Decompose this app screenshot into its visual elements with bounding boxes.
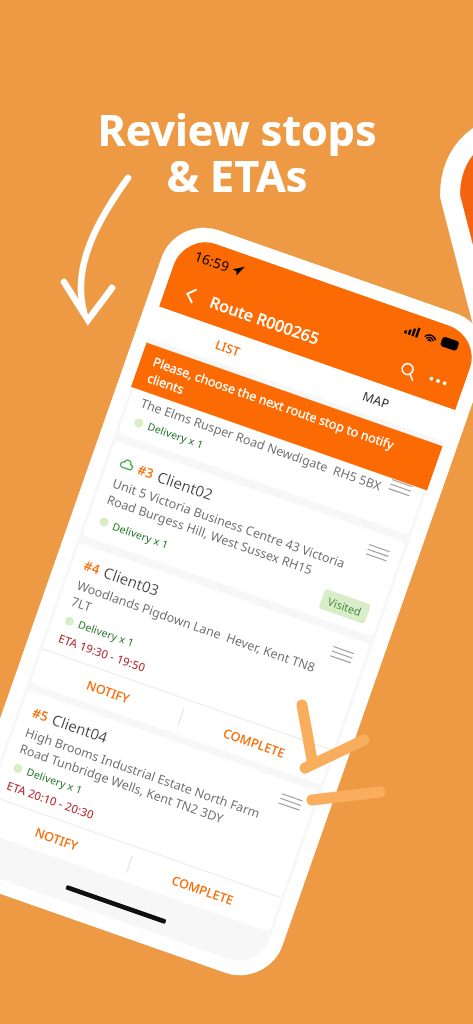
staticText: COMPLETE (221, 724, 288, 762)
staticText: The Elms Rusper Road Newdigate RH5 5BX (138, 395, 384, 495)
button[interactable]: #2 (118, 345, 439, 535)
button[interactable]: #5 (0, 690, 319, 932)
staticText: Client03 (101, 562, 162, 600)
staticText: Client02 (155, 466, 216, 504)
button[interactable]: NOTIFY (30, 649, 186, 734)
button[interactable]: #4 (30, 543, 370, 785)
staticText: Review stops & ETAs (97, 100, 377, 205)
button[interactable]: Search (390, 353, 426, 388)
button[interactable]: COMPLETE (124, 847, 281, 932)
staticText: Delivery x 1 (146, 419, 206, 452)
staticText: #5 (30, 703, 51, 725)
button[interactable]: NOTIFY (0, 796, 135, 881)
button[interactable]: LIST (148, 307, 307, 390)
staticText: Visited (326, 593, 364, 619)
staticText: Client01 (170, 366, 231, 404)
staticText: COMPLETE (169, 872, 236, 909)
staticText: 16:59 (192, 246, 232, 276)
staticText: #3 (135, 460, 156, 483)
button[interactable]: Reorder (275, 787, 306, 817)
staticText: Woodlands Pigdown Lane Hever, Kent TN8 7… (69, 577, 327, 694)
button[interactable]: Reorder (385, 473, 417, 502)
staticText: LIST (213, 336, 243, 360)
button[interactable]: COMPLETE (176, 700, 333, 785)
button[interactable]: Please, choose the next route stop to no… (131, 342, 443, 490)
staticText: #4 (81, 556, 103, 578)
button[interactable]: Reorder (326, 640, 358, 669)
staticText: MAP (360, 387, 392, 413)
button[interactable]: MAP (296, 358, 455, 441)
staticText: NOTIFY (33, 824, 81, 855)
staticText: Delivery x 1 (25, 764, 85, 797)
staticText: Delivery x 1 (76, 617, 136, 650)
staticText: Unit 5 Victoria Business Centre 43 Victo… (105, 475, 363, 592)
staticText: ETA 20:10 - 20:30 (4, 778, 97, 823)
staticText: #2 (150, 360, 171, 382)
button[interactable]: More options (420, 363, 456, 399)
button[interactable]: Back (173, 277, 209, 312)
staticText: Route R000265 (207, 291, 323, 350)
staticText: High Brooms Industrial Estate North Farm… (18, 724, 276, 842)
staticText: Delivery x 1 (111, 519, 171, 552)
staticText: NOTIFY (84, 676, 132, 707)
staticText: Client04 (49, 709, 111, 747)
staticText: ETA 19:30 - 19:50 (56, 630, 148, 676)
button[interactable]: Reorder (362, 538, 394, 567)
button[interactable]: #3 (82, 441, 406, 637)
staticText: Please, choose the next route stop to no… (145, 353, 406, 473)
